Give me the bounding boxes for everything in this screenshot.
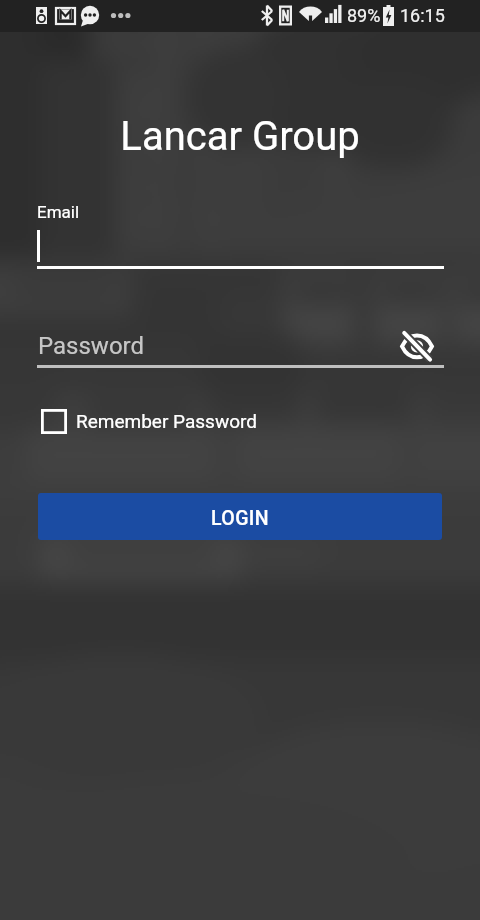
- staticText: Remember Password: [76, 410, 258, 432]
- button[interactable]: Show password: [400, 331, 434, 361]
- staticText: Email: [37, 202, 80, 222]
- staticText: 89%: [347, 5, 381, 26]
- button[interactable]: Remember Password: [41, 403, 258, 439]
- staticText: 16:15: [400, 5, 445, 26]
- staticText: Password: [38, 332, 145, 360]
- staticText: LOGIN: [211, 507, 269, 530]
- staticText: Lancar Group: [0, 113, 480, 160]
- button[interactable]: LOGIN: [38, 493, 442, 540]
